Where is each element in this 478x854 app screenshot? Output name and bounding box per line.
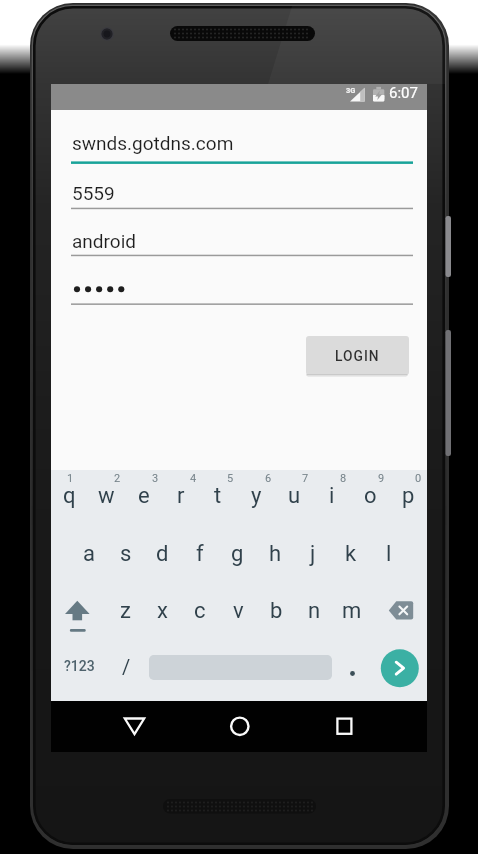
staticText: j <box>310 541 316 567</box>
button[interactable]: m <box>333 582 371 640</box>
button[interactable]: f <box>181 525 218 582</box>
button[interactable]: v <box>219 582 257 640</box>
button[interactable] <box>71 128 413 164</box>
button[interactable] <box>374 640 427 701</box>
button[interactable]: d <box>144 525 181 582</box>
staticText: i <box>329 483 335 509</box>
staticText: LOGIN <box>335 348 380 364</box>
button[interactable]: q <box>51 468 88 524</box>
button[interactable]: n <box>295 582 333 640</box>
staticText: 9 <box>378 472 385 485</box>
button[interactable]: w <box>88 468 125 524</box>
button[interactable]: ?123 <box>51 640 107 701</box>
button[interactable]: LOGIN <box>306 336 409 375</box>
staticText: x <box>157 598 168 624</box>
button[interactable]: e <box>125 468 162 524</box>
staticText: 1 <box>67 472 74 485</box>
staticText: g <box>231 541 244 567</box>
button[interactable]: / <box>107 640 145 701</box>
staticText: f <box>196 541 204 567</box>
staticText: 4 <box>190 472 197 485</box>
button[interactable] <box>215 701 265 752</box>
staticText: n <box>308 598 321 624</box>
button[interactable] <box>51 582 107 640</box>
staticText: 5559 <box>72 182 115 204</box>
staticText: r <box>177 483 185 509</box>
staticText: 2 <box>114 472 121 485</box>
button[interactable]: x <box>144 582 181 640</box>
staticText: ?123 <box>64 658 95 674</box>
button[interactable]: t <box>199 468 237 524</box>
staticText: l <box>386 541 392 567</box>
button[interactable]: y <box>237 468 275 524</box>
button[interactable]: b <box>257 582 295 640</box>
staticText: v <box>233 598 244 624</box>
button[interactable]: u <box>275 468 313 524</box>
staticText: y <box>251 483 262 509</box>
staticText: 3G <box>346 86 356 95</box>
staticText: d <box>156 541 169 567</box>
staticText: 6:07 <box>389 84 418 102</box>
button[interactable]: a <box>70 525 107 582</box>
staticText: q <box>63 483 76 509</box>
staticText: z <box>120 598 131 624</box>
staticText: 5 <box>227 472 234 485</box>
staticText: s <box>120 541 132 567</box>
staticText: e <box>138 483 150 509</box>
staticText: 7 <box>302 472 309 485</box>
button[interactable] <box>336 640 374 701</box>
button[interactable]: j <box>294 525 332 582</box>
button[interactable] <box>110 701 160 752</box>
button[interactable]: r <box>162 468 199 524</box>
staticText: w <box>98 483 115 509</box>
staticText: a <box>83 541 95 567</box>
button[interactable]: h <box>256 525 294 582</box>
button[interactable] <box>71 222 413 256</box>
button[interactable]: c <box>181 582 219 640</box>
staticText: k <box>345 541 357 567</box>
staticText: 3 <box>152 472 159 485</box>
button[interactable]: k <box>332 525 370 582</box>
staticText: 6 <box>265 472 272 485</box>
staticText: android <box>72 230 136 252</box>
button[interactable] <box>320 701 370 752</box>
button[interactable]: p <box>389 468 427 524</box>
button[interactable]: o <box>351 468 389 524</box>
staticText: swnds.gotdns.com <box>72 132 234 154</box>
staticText: 0 <box>415 472 422 485</box>
staticText: 8 <box>340 472 347 485</box>
button[interactable]: g <box>218 525 256 582</box>
button[interactable]: z <box>107 582 144 640</box>
staticText: o <box>364 483 377 509</box>
button[interactable] <box>71 270 413 305</box>
staticText: t <box>214 483 222 509</box>
button[interactable] <box>71 175 413 209</box>
staticText: m <box>342 598 362 624</box>
button[interactable] <box>371 582 427 640</box>
button[interactable]: s <box>107 525 144 582</box>
staticText: u <box>288 483 301 509</box>
staticText: p <box>402 483 415 509</box>
button[interactable]: i <box>313 468 351 524</box>
staticText: h <box>269 541 282 567</box>
staticText: / <box>122 655 131 678</box>
staticText: c <box>194 598 206 624</box>
staticText: b <box>270 598 283 624</box>
button[interactable]: l <box>370 525 408 582</box>
